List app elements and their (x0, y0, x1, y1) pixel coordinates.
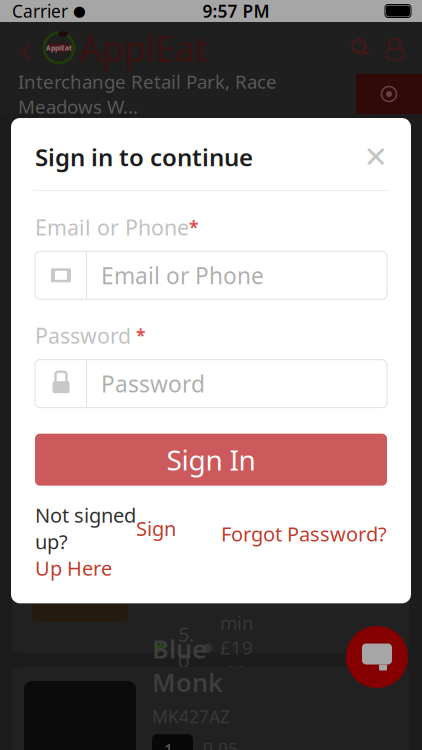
staticText: ★ (152, 636, 170, 659)
button[interactable]: Chat support (344, 624, 410, 690)
staticText: 5.0 (178, 621, 194, 674)
staticText: Sign in to continue (35, 141, 253, 173)
staticText: ● (68, 3, 86, 19)
staticText: Interchange Retail Park, Race Meadows W.… (18, 69, 277, 119)
staticText: Forgot Password? (221, 520, 387, 547)
staticText: 1 hr (164, 739, 181, 750)
staticText: 0.05 MI (203, 511, 238, 557)
staticText: min £19.99 (220, 610, 254, 684)
staticText: MK427AZ (152, 705, 230, 728)
staticText: Carrier (12, 0, 68, 22)
button[interactable]: Sign (136, 515, 176, 541)
staticText: * (131, 324, 145, 347)
staticText: min £19.99 (170, 567, 230, 616)
button[interactable]: Sign In (35, 434, 387, 486)
button[interactable]: Up Here (35, 555, 112, 581)
button[interactable]: Back (10, 26, 40, 70)
staticText: Sign (136, 515, 176, 541)
button[interactable]: Close (359, 140, 393, 174)
staticText: Email or Phone (35, 213, 189, 241)
staticText: ApplEat (46, 44, 72, 52)
staticText: Sign In (166, 441, 255, 478)
staticText: Email or Phone (101, 260, 264, 290)
staticText: 0.05 MI (203, 737, 238, 750)
staticText: ✕ (363, 140, 388, 174)
button[interactable]: Account (378, 26, 412, 70)
staticText: ● (202, 640, 212, 654)
staticText: * (189, 216, 198, 239)
staticText: ‹ (19, 25, 30, 71)
staticText: Not signed up? (35, 502, 136, 555)
staticText: 1 hr (164, 513, 181, 556)
staticText: Password (35, 321, 131, 350)
staticText: ApplEat (79, 24, 208, 72)
button[interactable]: Search (344, 26, 378, 70)
staticText: 9:57 PM (202, 0, 269, 22)
button[interactable]: Use current location (356, 74, 422, 114)
button[interactable]: Forgot Password? (221, 520, 387, 547)
staticText: Blue Monk (152, 632, 223, 699)
staticText: Up Here (35, 555, 112, 581)
staticText: Pad Thai (152, 406, 204, 473)
staticText: Password (101, 369, 205, 399)
